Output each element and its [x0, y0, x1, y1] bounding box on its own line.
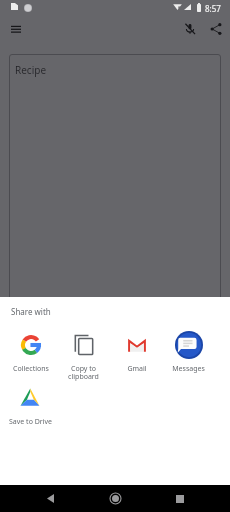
button[interactable]: Save to Drive — [4, 384, 57, 427]
staticText: Gmail — [127, 364, 147, 374]
staticText: Copy to clipboard — [68, 364, 99, 381]
button[interactable]: Menu — [4, 17, 28, 41]
button[interactable]: Back — [35, 485, 65, 512]
staticText: 8:57 — [205, 3, 221, 14]
button[interactable]: Recent apps — [165, 485, 195, 512]
button[interactable]: Mute microphone — [178, 17, 202, 41]
button[interactable]: Share — [204, 17, 228, 41]
staticText: Share with — [11, 306, 51, 317]
button[interactable]: Messages — [162, 331, 215, 374]
button[interactable]: Gmail — [110, 331, 163, 374]
staticText: Messages — [172, 364, 205, 374]
staticText: Save to Drive — [9, 417, 52, 427]
staticText: Collections — [13, 364, 49, 374]
button[interactable]: Home — [100, 485, 130, 512]
button[interactable]: Copy to clipboard — [57, 331, 110, 381]
button[interactable]: Collections — [4, 331, 57, 374]
staticText: Recipe — [15, 63, 47, 77]
